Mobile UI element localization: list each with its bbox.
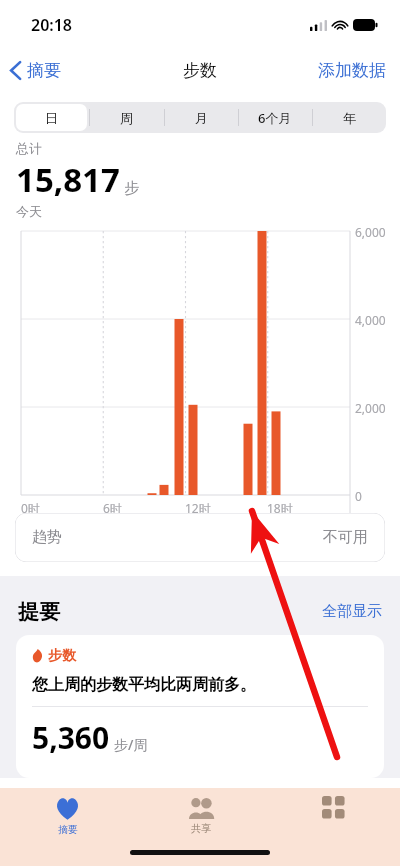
staticText: 周	[120, 110, 133, 126]
staticText: 摘要	[27, 60, 61, 81]
staticText: 日	[45, 110, 58, 126]
staticText: 不可用	[323, 528, 368, 547]
button[interactable]: 年	[312, 102, 386, 133]
button[interactable]: 摘要	[0, 788, 134, 844]
staticText: 年	[343, 110, 356, 126]
staticText: 步	[124, 179, 139, 198]
staticText: 6时	[103, 500, 122, 516]
staticText: 6个月	[258, 109, 292, 127]
staticText: 步数	[183, 60, 217, 81]
staticText: 15,817	[16, 157, 120, 202]
staticText: 12时	[185, 500, 211, 516]
staticText: 2,000	[355, 400, 386, 416]
staticText: 今天	[16, 203, 42, 219]
button[interactable]: 趋势	[15, 513, 385, 562]
staticText: 步/周	[114, 735, 148, 754]
button[interactable]: 添加数据	[304, 54, 400, 87]
staticText: 20:18	[31, 14, 73, 36]
staticText: 0时	[21, 500, 40, 516]
button[interactable]: 月	[164, 102, 238, 133]
staticText: 5,360	[32, 717, 110, 758]
staticText: 月	[195, 110, 208, 126]
staticText: 摘要	[58, 823, 78, 836]
staticText: 您上周的步数平均比两周前多。	[32, 675, 256, 695]
staticText: 4,000	[355, 312, 386, 328]
staticText: 6,000	[355, 224, 386, 240]
button[interactable]: 6个月	[238, 102, 312, 133]
button[interactable]: 摘要	[0, 54, 69, 87]
staticText: 0	[355, 488, 362, 504]
staticText: 提要	[18, 599, 60, 625]
button[interactable]: 日	[14, 102, 89, 133]
staticText: 共享	[191, 822, 211, 835]
staticText: 总计	[16, 140, 42, 156]
button[interactable]: 浏览	[267, 788, 400, 844]
button[interactable]: 全部显示	[320, 598, 384, 625]
button[interactable]: 共享	[134, 788, 267, 844]
staticText: 趋势	[32, 528, 62, 547]
staticText: 步数	[48, 647, 76, 665]
button[interactable]: 步数	[16, 635, 384, 778]
button[interactable]: 周	[89, 102, 164, 133]
staticText: 18时	[267, 500, 293, 516]
